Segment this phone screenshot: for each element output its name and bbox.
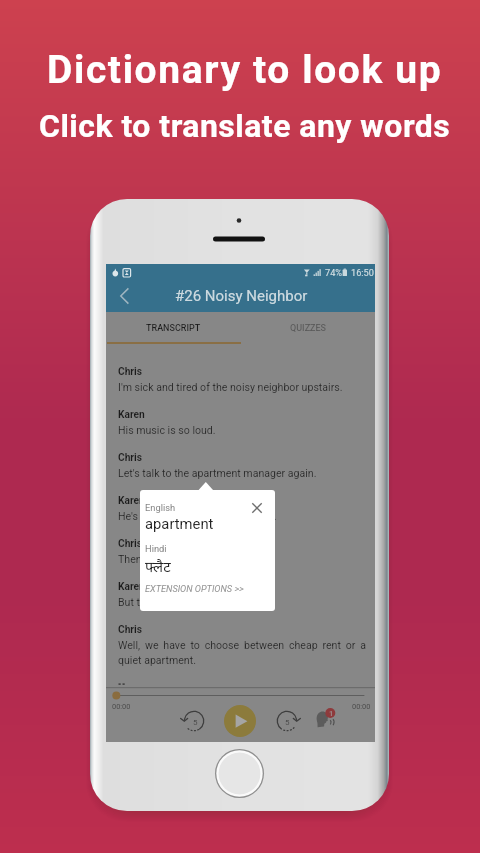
staticText: apartment	[145, 515, 214, 532]
button[interactable]: EXTENSION OPTIONS >>	[140, 580, 275, 602]
button[interactable]: TRANSCRIPT	[106, 312, 241, 345]
staticText: 00:00	[352, 702, 371, 711]
staticText: QUIZZES	[290, 323, 327, 334]
button[interactable]: Back	[106, 280, 140, 312]
button[interactable]: Forward 5 seconds	[273, 707, 301, 735]
staticText: Dictionary to look up	[47, 47, 443, 93]
staticText: His music is so loud.	[118, 424, 366, 436]
staticText: 5	[285, 718, 290, 727]
staticText: 74%	[325, 267, 343, 278]
staticText: Let's talk to the apartment manager agai…	[118, 467, 366, 479]
staticText: Karen	[118, 409, 145, 421]
staticText: English	[145, 502, 176, 513]
staticText: TRANSCRIPT	[146, 323, 201, 334]
staticText: Click to translate any words	[39, 107, 451, 145]
staticText: 1	[329, 709, 334, 718]
staticText: Karen	[118, 581, 145, 593]
staticText: #26 Noisy Neighbor	[175, 287, 308, 305]
staticText: 00:00	[112, 702, 131, 711]
staticText: Hindi	[145, 543, 167, 554]
button[interactable]: Play	[224, 705, 256, 737]
staticText: फ्लैट	[145, 556, 171, 576]
staticText: I'm sick and tired of the noisy neighbor…	[118, 381, 366, 393]
staticText: EXTENSION OPTIONS >>	[145, 583, 244, 594]
staticText: Then let's move.	[118, 553, 366, 565]
staticText: Chris	[118, 366, 143, 378]
button[interactable]: Speaking practice	[312, 707, 342, 737]
staticText: 5	[193, 718, 198, 727]
button[interactable]: Rewind 5 seconds	[180, 707, 208, 735]
button[interactable]: QUIZZES	[241, 312, 376, 345]
button[interactable]: Close	[247, 498, 267, 518]
staticText: 16:50	[351, 267, 374, 278]
staticText: But this place is so cheap.	[118, 596, 366, 608]
staticText: Chris	[118, 452, 143, 464]
staticText: Chris	[118, 624, 143, 636]
staticText: Chris	[118, 538, 143, 550]
staticText: He's never done anything about it.	[118, 510, 366, 522]
staticText: Karen	[118, 495, 145, 507]
staticText: Well, we have to choose between cheap re…	[118, 639, 366, 666]
